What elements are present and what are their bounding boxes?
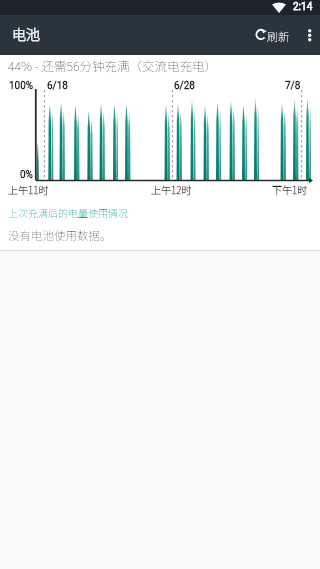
button[interactable]: 刷新 — [240, 15, 296, 55]
staticText: 6/28 — [174, 80, 195, 92]
button[interactable] — [296, 19, 320, 51]
staticText: 6/18 — [47, 80, 68, 92]
staticText: 上次充满后的电量使用情况 — [8, 205, 128, 219]
button[interactable]: 上次充满后的电量使用情况 — [0, 200, 320, 224]
staticText: 2:14 — [293, 1, 313, 13]
staticText: 44% - 还需56分钟充满（交流电充电） — [8, 56, 218, 74]
staticText: 电池 — [12, 24, 40, 44]
staticText: 7/8 — [285, 80, 301, 92]
staticText: 下午1时 — [272, 182, 308, 196]
staticText: 刷新 — [267, 28, 289, 44]
staticText: 100% — [9, 80, 34, 92]
staticText: 上午11时 — [8, 182, 49, 196]
staticText: 没有电池使用数据。 — [8, 227, 112, 244]
staticText: 上午12时 — [151, 182, 192, 196]
staticText: 0% — [20, 169, 33, 181]
